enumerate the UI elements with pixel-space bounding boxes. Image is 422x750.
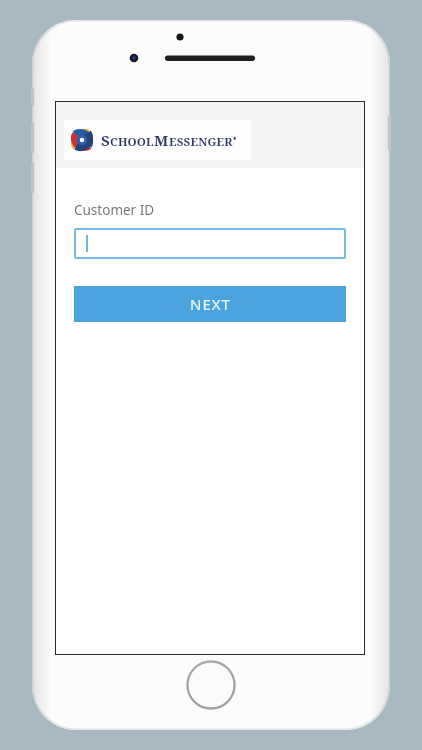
staticText: NEXT: [190, 294, 231, 314]
button[interactable]: NEXT: [74, 286, 346, 322]
button[interactable]: SchoolMessenger: [69, 120, 237, 160]
staticText: Customer ID: [74, 201, 155, 219]
staticText: •: [233, 133, 237, 145]
staticText: S: [101, 130, 110, 150]
staticText: CHOOL: [110, 134, 154, 150]
staticText: M: [154, 130, 169, 150]
staticText: ESSENGER: [169, 134, 233, 150]
button[interactable]: Customer ID input field: [74, 228, 346, 259]
